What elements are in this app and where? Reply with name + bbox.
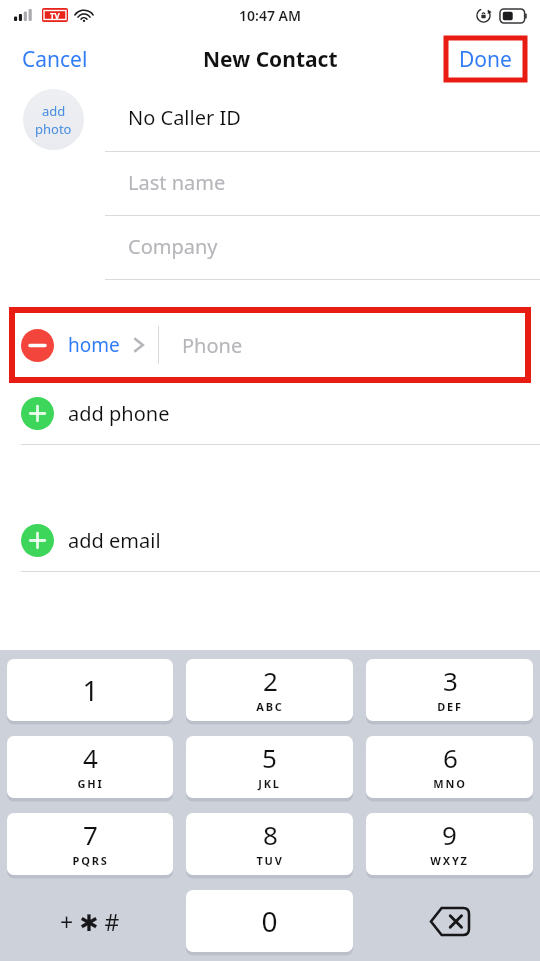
staticText: home bbox=[68, 332, 120, 358]
staticText: ABC bbox=[256, 699, 284, 714]
staticText: TV bbox=[50, 10, 60, 21]
button[interactable]: 6 bbox=[366, 736, 533, 798]
staticText: 3 bbox=[443, 663, 458, 698]
button[interactable]: 7 bbox=[7, 813, 173, 875]
button[interactable]: No Caller ID bbox=[105, 88, 540, 151]
staticText: 0 bbox=[261, 902, 278, 940]
staticText: Last name bbox=[128, 169, 226, 196]
staticText: Company bbox=[128, 233, 218, 260]
button[interactable]: Add bbox=[21, 397, 54, 430]
staticText: add email bbox=[68, 527, 161, 554]
staticText: JKL bbox=[258, 776, 281, 791]
staticText: 9 bbox=[442, 817, 457, 852]
staticText: 8 bbox=[263, 817, 278, 852]
staticText: 6 bbox=[443, 740, 458, 775]
staticText: 2 bbox=[263, 663, 278, 698]
staticText: + ✱ # bbox=[60, 906, 120, 937]
staticText: photo bbox=[35, 120, 72, 138]
button[interactable]: Add bbox=[0, 509, 540, 571]
staticText: New Contact bbox=[203, 45, 338, 74]
button[interactable]: Delete bbox=[366, 890, 533, 952]
button[interactable]: 2 bbox=[186, 659, 353, 721]
button[interactable]: Add bbox=[21, 524, 54, 557]
staticText: GHI bbox=[77, 776, 104, 791]
staticText: TUV bbox=[256, 853, 284, 868]
button[interactable]: Company bbox=[0, 216, 540, 279]
button[interactable]: 1 bbox=[7, 659, 173, 721]
staticText: 7 bbox=[83, 817, 98, 852]
button[interactable]: Done bbox=[446, 38, 525, 80]
button[interactable]: Last name bbox=[0, 152, 540, 215]
staticText: DEF bbox=[437, 699, 463, 714]
button[interactable]: 0 bbox=[186, 890, 353, 952]
staticText: 10:47 AM bbox=[239, 6, 301, 25]
staticText: 1 bbox=[82, 671, 99, 709]
staticText: 4 bbox=[83, 740, 98, 775]
staticText: Phone bbox=[182, 332, 243, 359]
button[interactable]: 5 bbox=[186, 736, 353, 798]
button[interactable]: Remove phone bbox=[21, 329, 54, 362]
staticText: WXYZ bbox=[430, 853, 469, 868]
staticText: 5 bbox=[262, 740, 277, 775]
button[interactable]: add bbox=[23, 89, 84, 150]
staticText: Cancel bbox=[22, 45, 88, 74]
staticText: Done bbox=[459, 45, 512, 74]
button[interactable]: 3 bbox=[366, 659, 533, 721]
button[interactable]: Remove phone bbox=[0, 308, 540, 382]
button[interactable]: 4 bbox=[7, 736, 173, 798]
button[interactable]: 9 bbox=[366, 813, 533, 875]
staticText: MNO bbox=[433, 776, 467, 791]
staticText: add phone bbox=[68, 400, 170, 427]
staticText: No Caller ID bbox=[128, 104, 241, 131]
button[interactable]: 8 bbox=[186, 813, 353, 875]
button[interactable]: Add bbox=[0, 382, 540, 444]
staticText: PQRS bbox=[72, 853, 109, 868]
button[interactable]: Cancel bbox=[0, 37, 110, 82]
button[interactable]: Plus star pound bbox=[7, 890, 173, 952]
staticText: add bbox=[42, 102, 66, 120]
